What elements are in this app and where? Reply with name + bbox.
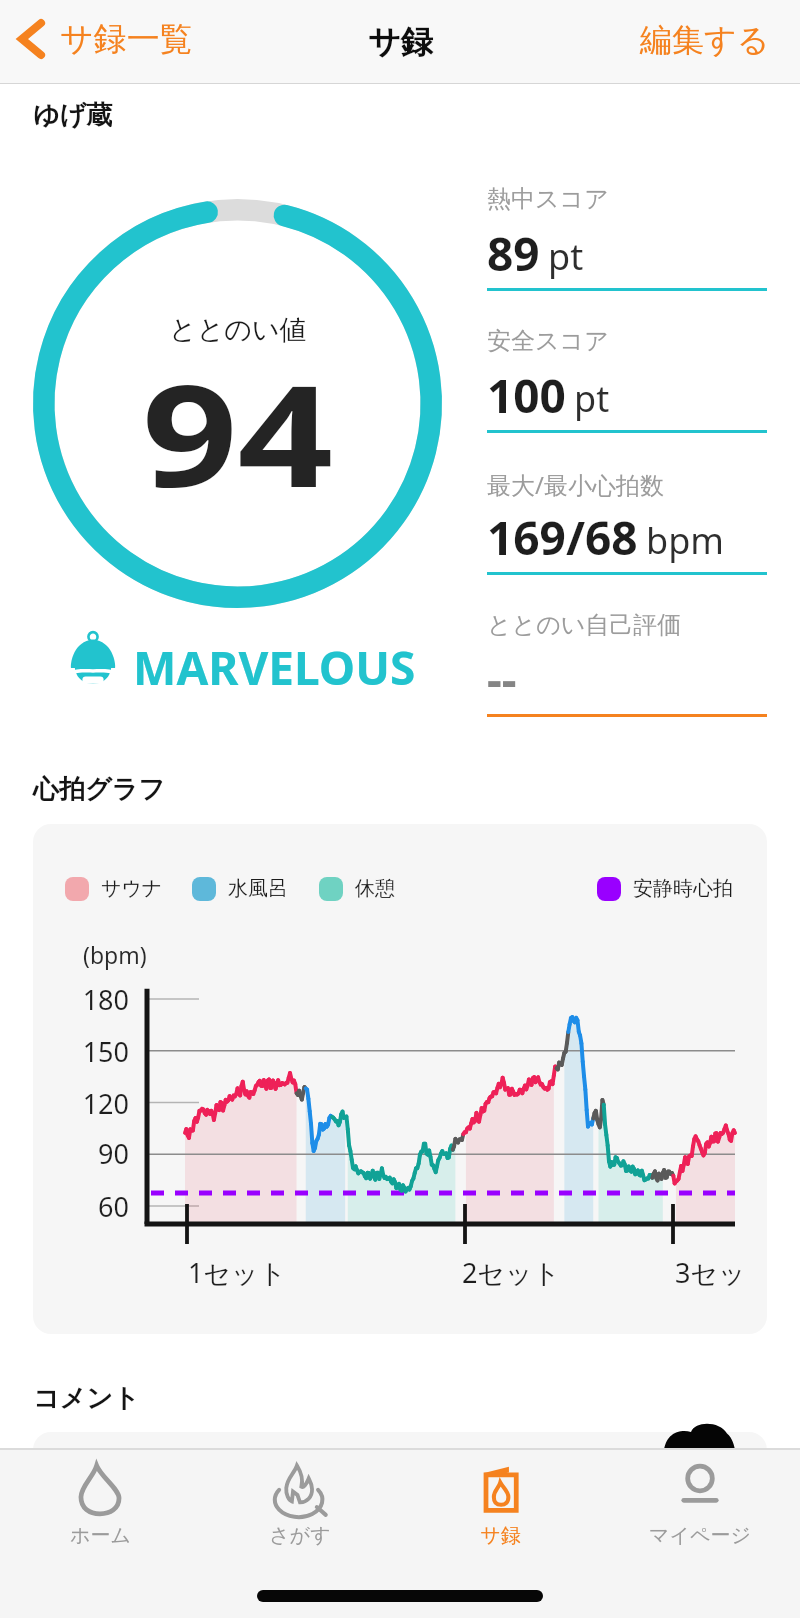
staticText: 90 xyxy=(98,1135,129,1172)
staticText: pt xyxy=(574,374,610,423)
staticText: 編集する xyxy=(640,20,770,60)
staticText: さがす xyxy=(269,1523,331,1548)
staticText: 100 xyxy=(487,364,566,427)
staticText: 2セット xyxy=(462,1254,561,1291)
staticText: 心拍グラフ xyxy=(33,773,165,806)
staticText: 120 xyxy=(82,1085,129,1122)
staticText: ととのい値 xyxy=(169,313,307,347)
staticText: 熱中スコア xyxy=(487,184,609,214)
other: My page xyxy=(672,1460,728,1516)
button[interactable]: My page xyxy=(600,1450,800,1548)
button[interactable]: Records xyxy=(400,1450,600,1548)
staticText: 安全スコア xyxy=(487,326,609,356)
other: Search xyxy=(272,1460,328,1516)
other: Home xyxy=(72,1460,128,1516)
button[interactable]: Home xyxy=(0,1450,200,1548)
staticText: 150 xyxy=(82,1033,129,1070)
staticText: 水風呂 xyxy=(228,876,288,901)
other: Records xyxy=(472,1460,528,1516)
staticText: サ録 xyxy=(368,22,433,62)
staticText: ととのい自己評価 xyxy=(487,610,682,640)
staticText: 休憩 xyxy=(355,876,395,901)
staticText: サ録 xyxy=(480,1523,521,1548)
staticText: bpm xyxy=(646,516,724,565)
staticText: 1セット xyxy=(188,1254,287,1291)
staticText: MARVELOUS xyxy=(133,636,416,699)
staticText: ゆげ蔵 xyxy=(33,99,113,132)
button[interactable]: 編集する xyxy=(624,14,800,70)
staticText: pt xyxy=(548,232,584,281)
staticText: 94 xyxy=(142,337,334,529)
staticText: サウナ xyxy=(101,876,163,901)
staticText: 安静時心拍 xyxy=(633,876,733,901)
button[interactable]: Search xyxy=(200,1450,400,1548)
staticText: 最大/最小心拍数 xyxy=(487,468,664,501)
staticText: コメント xyxy=(33,1382,140,1415)
staticText: 60 xyxy=(98,1188,129,1225)
staticText: ホーム xyxy=(70,1523,131,1548)
staticText: (bpm) xyxy=(83,939,147,970)
staticText: 169/68 xyxy=(487,506,638,569)
staticText: -- xyxy=(487,648,517,711)
staticText: 3セッ xyxy=(675,1254,746,1291)
staticText: 89 xyxy=(487,222,540,285)
button[interactable]: サ録一覧 xyxy=(0,13,207,71)
staticText: 180 xyxy=(82,981,129,1018)
staticText: サ録一覧 xyxy=(60,18,193,60)
staticText: マイページ xyxy=(649,1523,751,1548)
